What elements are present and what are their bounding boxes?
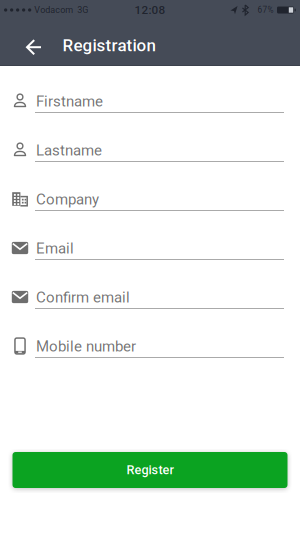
staticText: Register (126, 463, 173, 477)
button[interactable]: Lastname (0, 115, 300, 164)
button[interactable]: Firstname (0, 66, 300, 115)
button[interactable]: Email (0, 213, 300, 262)
staticText: Company (36, 190, 99, 208)
staticText: Vodacom (34, 5, 73, 15)
staticText: Confirm email (36, 288, 130, 306)
button[interactable]: Confirm email (0, 262, 300, 311)
button[interactable]: Mobile number (0, 311, 300, 360)
button[interactable]: Back (0, 20, 56, 66)
staticText: Registration (62, 35, 155, 55)
staticText: Lastname (36, 141, 102, 159)
staticText: Mobile number (36, 337, 136, 355)
staticText: 67% (257, 5, 273, 15)
button[interactable]: Company (0, 164, 300, 213)
staticText: 12:08 (134, 3, 165, 17)
button[interactable]: Register (12, 452, 287, 488)
staticText: 3G (77, 5, 88, 15)
staticText: Email (36, 239, 74, 257)
staticText: Firstname (36, 92, 103, 110)
